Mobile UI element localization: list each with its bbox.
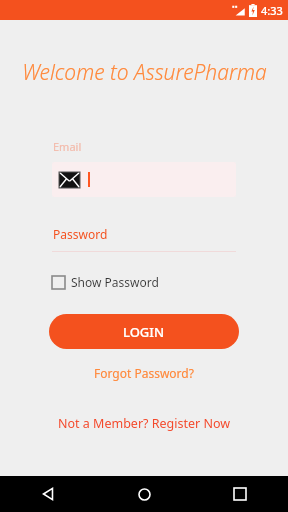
button[interactable]: Not a Member? Register Now <box>54 411 235 436</box>
staticText: Email <box>53 139 82 154</box>
button[interactable]: Back <box>0 476 96 512</box>
staticText: 4:33 <box>261 3 283 18</box>
staticText: Not a Member? Register Now <box>58 415 231 432</box>
button[interactable]: LOGIN <box>49 314 239 349</box>
button[interactable]: Home <box>96 476 192 512</box>
button[interactable]: Recent apps <box>192 476 288 512</box>
staticText: Password <box>53 226 108 242</box>
staticText: Show Password <box>71 274 159 290</box>
staticText: LOGIN <box>123 323 165 341</box>
button[interactable]: Forgot Password? <box>90 361 198 385</box>
staticText: Forgot Password? <box>94 365 194 381</box>
button[interactable]: Show Password <box>52 274 159 290</box>
button[interactable]: Email <box>52 162 236 197</box>
other: Email <box>59 172 80 188</box>
staticText: Welcome to AssurePharma <box>22 58 267 87</box>
